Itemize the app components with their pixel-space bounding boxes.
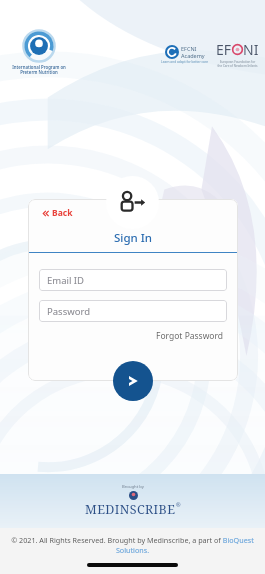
staticText: Forgot Password: [156, 330, 224, 342]
staticText: Email ID: [47, 274, 85, 287]
button[interactable]: Submit sign in: [113, 361, 153, 401]
staticText: EFCNI: [181, 45, 197, 52]
button[interactable]: Password: [39, 300, 227, 322]
staticText: MEDINSCRIBE: [85, 501, 176, 518]
button[interactable]: Forgot Password: [154, 329, 226, 343]
staticText: Academy: [181, 52, 205, 59]
staticText: Back: [52, 207, 73, 219]
staticText: © 2021. All Rights Reserved. Brought by …: [10, 535, 255, 555]
staticText: Brought by: [122, 484, 144, 490]
staticText: Learn and adapt for better care: [161, 60, 208, 64]
button[interactable]: Back: [40, 205, 75, 221]
staticText: ®: [176, 501, 181, 508]
staticText: International Program on Preterm Nutriti…: [12, 64, 66, 76]
button[interactable]: Email ID: [39, 269, 227, 291]
staticText: NI: [243, 40, 259, 59]
staticText: European Foundation for the Care of Newb…: [217, 60, 258, 68]
staticText: Password: [47, 305, 90, 318]
staticText: EF: [216, 40, 232, 59]
staticText: Sign In: [114, 230, 153, 246]
